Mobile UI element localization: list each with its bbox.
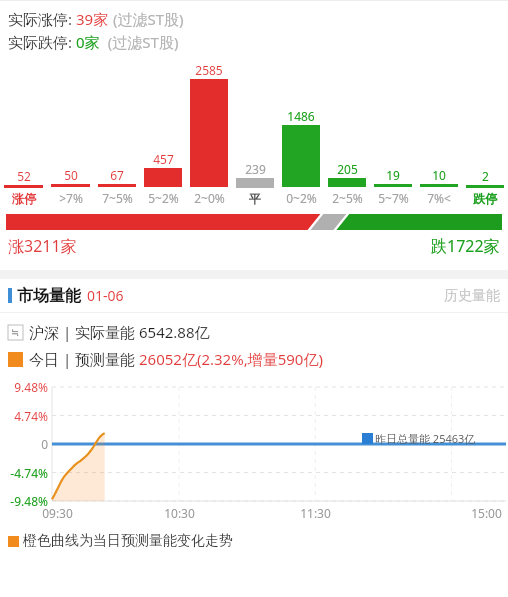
staticText: 跌1722家: [431, 235, 500, 257]
staticText: 09:30: [42, 505, 73, 521]
staticText: 26052亿(2.32%,增量590亿): [139, 349, 323, 369]
staticText: 9.48%: [14, 379, 48, 395]
staticText: 2: [482, 168, 489, 184]
staticText: >7%: [59, 190, 83, 206]
staticText: 跌停: [473, 191, 497, 206]
staticText: 01-06: [87, 286, 124, 305]
staticText: 67: [110, 167, 124, 183]
staticText: 11:30: [300, 505, 331, 521]
staticText: (过滤ST股): [109, 9, 184, 29]
staticText: 2~5%: [332, 190, 363, 206]
staticText: 7~5%: [102, 190, 133, 206]
staticText: 52: [17, 168, 31, 184]
staticText: 历史量能: [444, 287, 500, 305]
staticText: 19: [386, 167, 400, 183]
staticText: 7%<: [427, 190, 451, 206]
button[interactable]: 涨跌家数比例: [6, 214, 502, 230]
staticText: 0: [41, 436, 48, 452]
button[interactable]: 市场量能: [0, 279, 508, 312]
staticText: 橙色曲线为当日预测量能变化走势: [23, 532, 233, 550]
staticText: 10: [432, 167, 446, 183]
staticText: 0~2%: [286, 190, 317, 206]
staticText: 市场量能: [17, 286, 81, 306]
staticText: 沪深 | 实际量能 6542.88亿: [29, 322, 210, 342]
staticText: 涨停: [12, 191, 36, 206]
staticText: 50: [64, 167, 78, 183]
staticText: 4.74%: [14, 408, 48, 424]
staticText: 0家: [76, 32, 100, 52]
staticText: 昨日总量能 25463亿: [375, 431, 476, 446]
staticText: 239: [245, 161, 266, 177]
staticText: 涨3211家: [8, 235, 77, 257]
staticText: -4.74%: [10, 465, 48, 481]
staticText: ≒: [11, 327, 20, 339]
staticText: 实际跌停:: [8, 32, 76, 52]
staticText: 10:30: [164, 505, 195, 521]
staticText: 5~7%: [378, 190, 409, 206]
staticText: 2~0%: [194, 190, 225, 206]
staticText: 1486: [287, 108, 315, 124]
staticText: 39家: [76, 9, 109, 29]
staticText: 15:00: [471, 505, 502, 521]
staticText: 今日 | 预测量能: [29, 349, 139, 369]
staticText: 205: [337, 161, 358, 177]
staticText: -9.48%: [10, 493, 48, 509]
staticText: (过滤ST股): [100, 32, 179, 52]
staticText: 实际涨停:: [8, 9, 76, 29]
staticText: 457: [153, 151, 174, 167]
staticText: 平: [249, 191, 261, 206]
staticText: 2585: [195, 62, 223, 78]
staticText: 5~2%: [148, 190, 179, 206]
